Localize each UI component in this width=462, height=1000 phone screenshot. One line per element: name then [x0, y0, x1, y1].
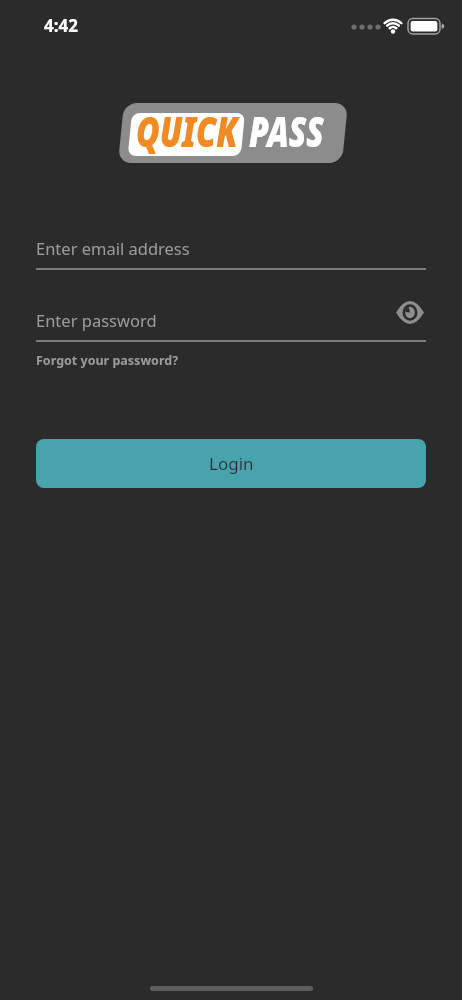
staticText: 4:42: [44, 14, 78, 37]
staticText: PASS: [249, 102, 324, 159]
staticText: Login: [209, 452, 254, 475]
staticText: Enter password: [36, 309, 157, 331]
button[interactable]: Forgot your password?: [36, 352, 179, 369]
button[interactable]: Enter email address: [36, 228, 426, 270]
button[interactable]: Enter password: [36, 300, 426, 342]
button[interactable]: Login: [36, 439, 426, 488]
button[interactable]: [396, 300, 424, 325]
staticText: Enter email address: [36, 237, 190, 259]
staticText: QUICK: [136, 102, 238, 159]
